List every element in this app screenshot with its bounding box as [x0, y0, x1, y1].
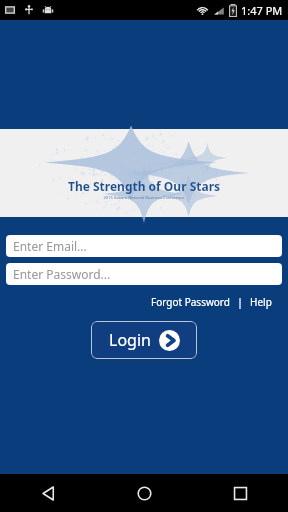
staticText: The Strength of Our Stars — [0, 178, 288, 194]
staticText: Enter Email... — [13, 238, 87, 254]
staticText: 2015 Subaru National Business Conference — [0, 195, 288, 200]
staticText: Login — [109, 329, 151, 351]
button[interactable]: Help — [248, 293, 274, 311]
button[interactable]: Enter Password... — [6, 263, 282, 285]
button[interactable]: Back — [0, 474, 96, 512]
button[interactable]: Enter Email... — [6, 235, 282, 257]
staticText: | — [232, 295, 248, 309]
button[interactable]: Forgot Password — [149, 293, 232, 311]
button[interactable]: Login — [91, 321, 197, 359]
staticText: Enter Password... — [13, 266, 111, 282]
staticText: Help — [250, 295, 272, 309]
button[interactable]: Home — [96, 474, 192, 512]
staticText: 1:47 PM — [241, 3, 283, 18]
staticText: Forgot Password — [151, 295, 230, 309]
button[interactable]: Recent apps — [192, 474, 288, 512]
